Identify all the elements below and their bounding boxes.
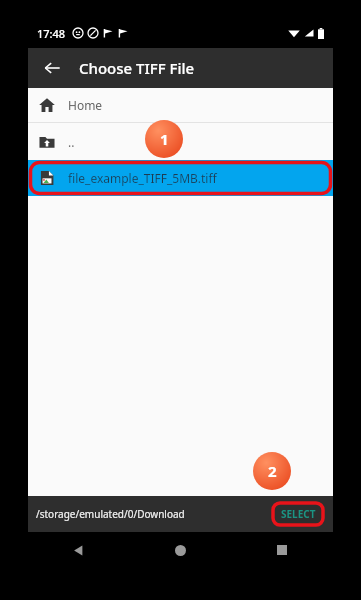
button[interactable]: file_example_TIFF_5MB.tiff xyxy=(28,160,333,196)
button[interactable]: Back xyxy=(37,53,67,83)
button[interactable]: Home xyxy=(129,532,231,568)
staticText: SELECT xyxy=(281,507,316,521)
staticText: Choose TIFF File xyxy=(79,58,195,78)
staticText: 2 xyxy=(268,461,277,481)
button[interactable]: Home xyxy=(28,88,333,122)
staticText: /storage/emulated/0/Download xyxy=(36,507,185,521)
button[interactable]: .. xyxy=(28,123,333,160)
staticText: 17:48 xyxy=(37,26,66,41)
staticText: Home xyxy=(68,97,103,113)
staticText: 1 xyxy=(160,129,169,149)
button[interactable]: Back xyxy=(28,532,129,568)
button[interactable]: Recents xyxy=(231,532,333,568)
staticText: .. xyxy=(68,134,75,150)
staticText: file_example_TIFF_5MB.tiff xyxy=(68,170,217,186)
button[interactable]: SELECT xyxy=(271,501,325,527)
